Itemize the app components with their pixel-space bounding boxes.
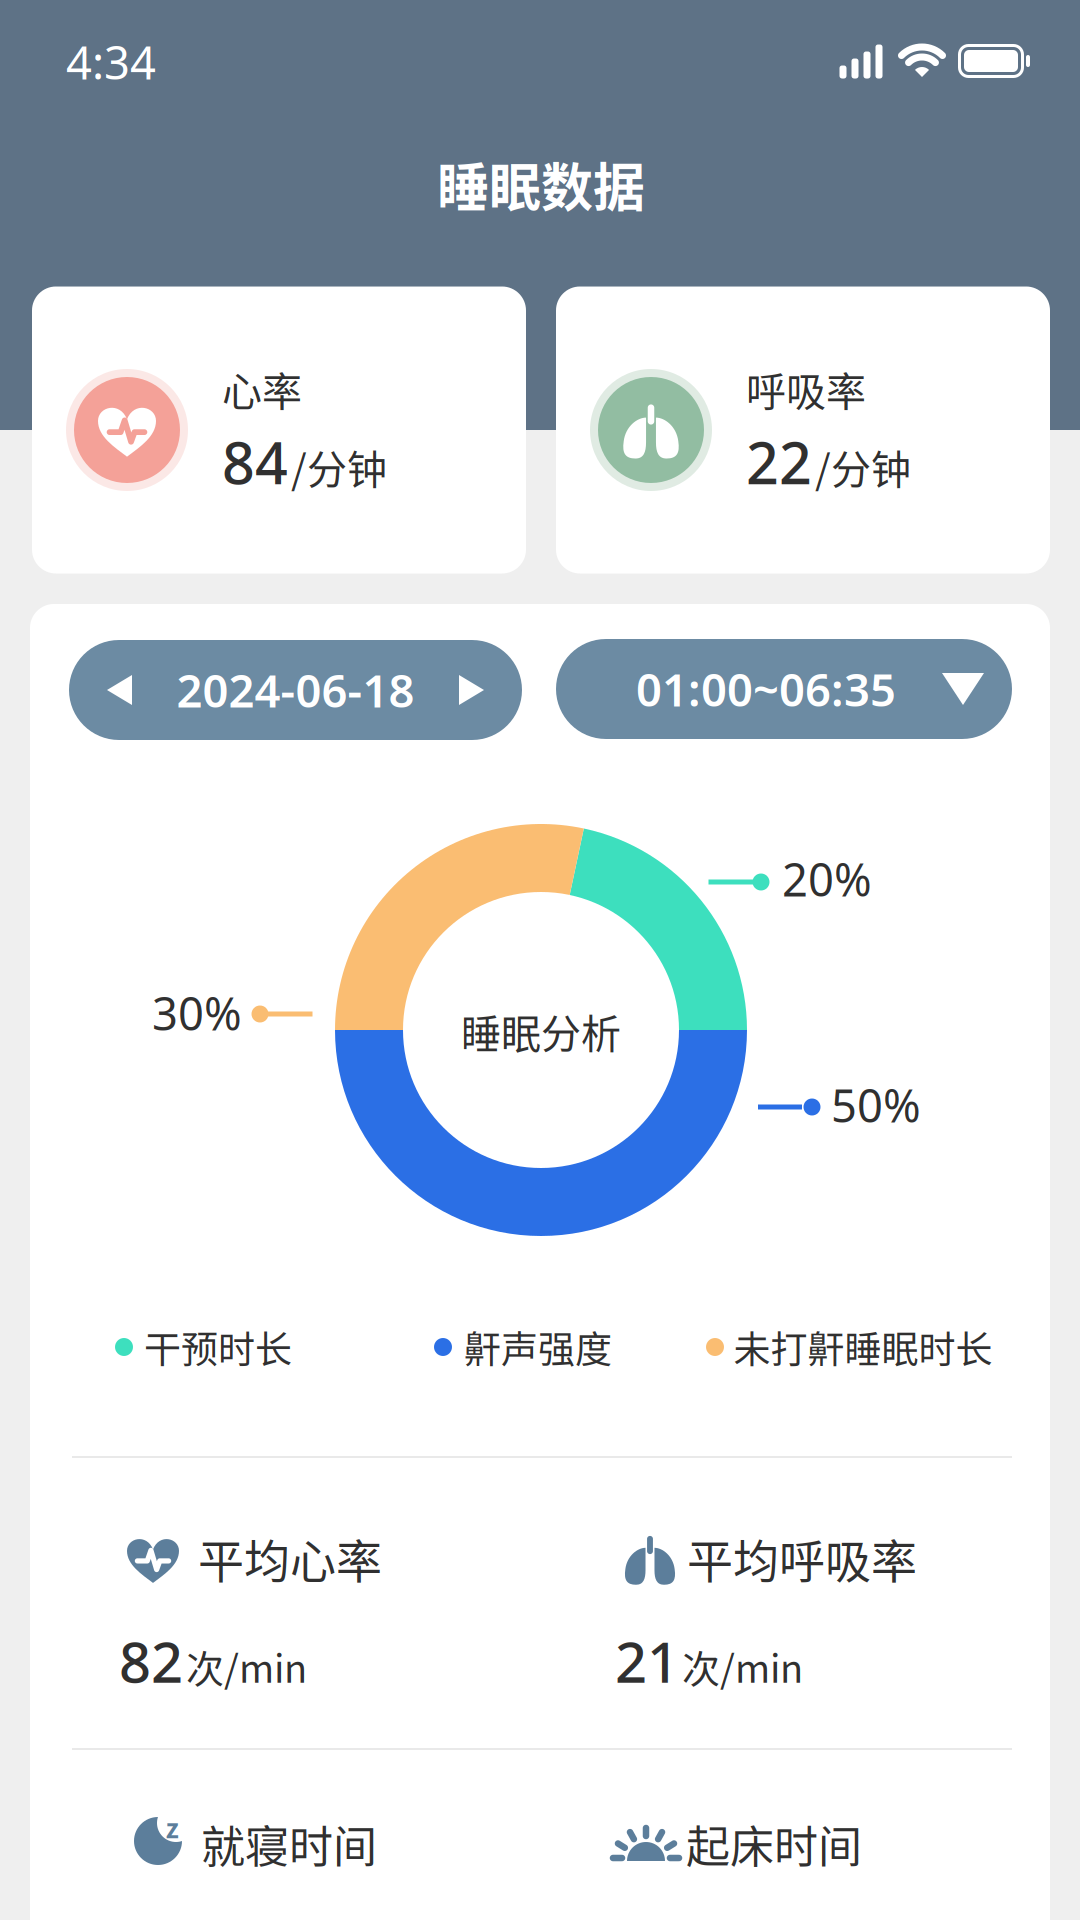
staticText: 平均心率 [198, 1525, 382, 1591]
staticText: 20% [782, 849, 872, 909]
button[interactable]: 前一天 [99, 667, 140, 713]
staticText: /分钟 [291, 438, 387, 496]
staticText: 就寝时间 [201, 1812, 377, 1876]
staticText: 心率 [222, 360, 302, 418]
staticText: 82 [119, 1624, 183, 1698]
button[interactable]: 01:00~06:35 [556, 639, 1012, 739]
staticText: 次/min [682, 1639, 803, 1694]
staticText: 次/min [186, 1639, 307, 1694]
staticText: /分钟 [815, 438, 911, 496]
staticText: 50% [831, 1075, 921, 1135]
staticText: 2024-06-18 [176, 660, 414, 720]
staticText: z [165, 1808, 178, 1846]
button[interactable]: 后一天 [451, 667, 492, 713]
staticText: 睡眠分析 [461, 1002, 621, 1060]
staticText: 平均呼吸率 [687, 1525, 917, 1591]
staticText: 4:34 [66, 32, 156, 92]
staticText: 未打鼾睡眠时长 [733, 1320, 992, 1374]
staticText: 睡眠数据 [437, 146, 645, 222]
staticText: 呼吸率 [746, 360, 866, 418]
button[interactable]: 2024-06-18 [69, 640, 522, 740]
staticText: 30% [152, 983, 242, 1043]
staticText: 起床时间 [686, 1812, 862, 1876]
staticText: 01:00~06:35 [636, 659, 896, 719]
staticText: 21 [615, 1624, 679, 1698]
staticText: 鼾声强度 [464, 1320, 612, 1374]
staticText: 干预时长 [144, 1320, 292, 1374]
button[interactable]: 心率 [32, 286, 526, 573]
staticText: 22 [746, 424, 812, 500]
staticText: 84 [222, 424, 288, 500]
button[interactable]: 呼吸率 [556, 286, 1050, 573]
